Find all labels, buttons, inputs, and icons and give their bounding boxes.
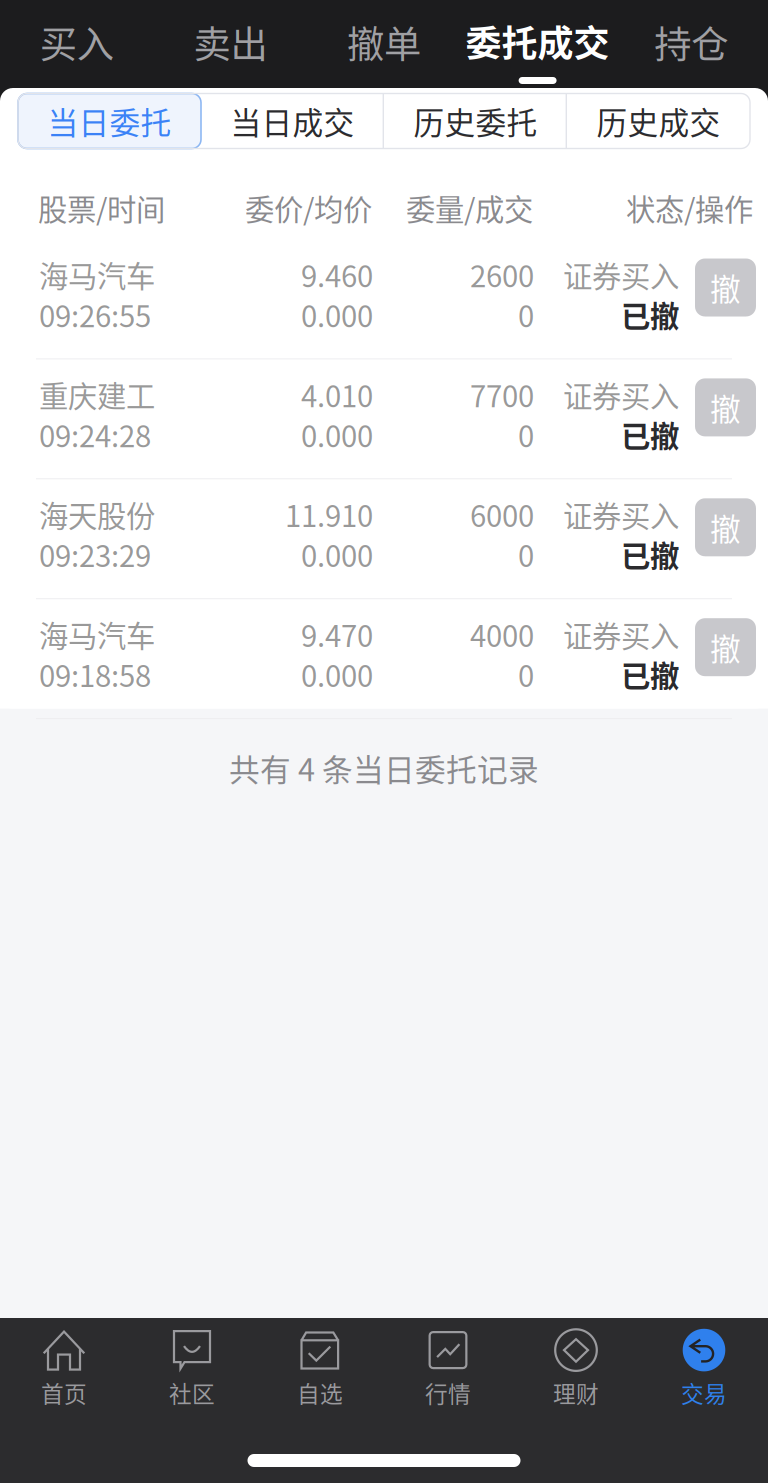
- button[interactable]: 交易: [640, 1321, 768, 1417]
- staticText: 9.470: [301, 613, 373, 655]
- staticText: 撤: [710, 505, 741, 549]
- staticText: 交易: [681, 1376, 727, 1409]
- staticText: 买入: [40, 15, 114, 69]
- staticText: 撤: [710, 265, 741, 310]
- button[interactable]: 理财: [512, 1321, 640, 1417]
- staticText: 卖出: [193, 15, 267, 69]
- staticText: 0.000: [301, 293, 373, 336]
- button[interactable]: 撤: [695, 258, 756, 316]
- staticText: 0: [518, 413, 534, 456]
- staticText: 09:23:29: [39, 533, 151, 576]
- staticText: 09:18:58: [39, 653, 151, 695]
- staticText: 股票/时间: [38, 186, 165, 229]
- button[interactable]: 当日成交: [201, 93, 384, 148]
- button[interactable]: 历史成交: [567, 93, 750, 148]
- staticText: 海马汽车: [39, 253, 155, 296]
- button[interactable]: 社区: [128, 1321, 256, 1417]
- staticText: 理财: [553, 1376, 599, 1409]
- staticText: 委托成交: [466, 15, 610, 67]
- staticText: 行情: [425, 1376, 471, 1409]
- staticText: 7700: [470, 373, 534, 416]
- staticText: 9.460: [301, 253, 373, 296]
- staticText: 共有 4 条当日委托记录: [229, 746, 539, 790]
- staticText: 0.000: [301, 653, 373, 695]
- staticText: 当日委托: [47, 99, 171, 143]
- staticText: 证券买入: [563, 493, 679, 536]
- staticText: 历史成交: [596, 99, 720, 143]
- staticText: 已撤: [621, 653, 679, 695]
- button[interactable]: 当日委托: [18, 93, 201, 148]
- staticText: 0: [518, 293, 534, 336]
- button[interactable]: 自选: [256, 1321, 384, 1417]
- staticText: 撤: [710, 625, 741, 669]
- staticText: 2600: [470, 253, 534, 296]
- staticText: 海天股份: [39, 493, 155, 536]
- staticText: 状态/操作: [626, 186, 753, 229]
- staticText: 撤: [710, 385, 741, 430]
- button[interactable]: 撤: [695, 618, 756, 676]
- staticText: 委量/成交: [406, 186, 533, 229]
- button[interactable]: 行情: [384, 1321, 512, 1417]
- staticText: 09:24:28: [39, 413, 151, 456]
- staticText: 证券买入: [563, 253, 679, 296]
- button[interactable]: 卖出: [154, 0, 307, 88]
- button[interactable]: 撤: [695, 498, 756, 556]
- staticText: 海马汽车: [39, 613, 155, 655]
- staticText: 4000: [470, 613, 534, 655]
- staticText: 已撤: [621, 293, 679, 336]
- staticText: 持仓: [654, 15, 728, 69]
- staticText: 证券买入: [563, 373, 679, 416]
- staticText: 0.000: [301, 533, 373, 576]
- button[interactable]: 历史委托: [384, 93, 567, 148]
- staticText: 已撤: [621, 533, 679, 576]
- staticText: 已撤: [621, 413, 679, 456]
- staticText: 0: [518, 533, 534, 576]
- button[interactable]: 持仓: [614, 0, 768, 88]
- staticText: 证券买入: [563, 613, 679, 655]
- button[interactable]: 首页: [0, 1321, 128, 1417]
- staticText: 社区: [169, 1376, 215, 1409]
- staticText: 首页: [41, 1376, 87, 1409]
- button[interactable]: 买入: [0, 0, 154, 88]
- staticText: 11.910: [285, 493, 373, 536]
- staticText: 历史委托: [413, 99, 537, 143]
- staticText: 委价/均价: [245, 186, 372, 229]
- staticText: 重庆建工: [39, 373, 155, 416]
- staticText: 自选: [297, 1376, 343, 1409]
- staticText: 当日成交: [230, 99, 354, 143]
- staticText: 撤单: [347, 15, 421, 69]
- staticText: 09:26:55: [39, 293, 151, 336]
- button[interactable]: 撤: [695, 378, 756, 436]
- staticText: 6000: [470, 493, 534, 536]
- button[interactable]: 撤单: [307, 0, 461, 88]
- staticText: 0.000: [301, 413, 373, 456]
- button[interactable]: 委托成交: [461, 0, 614, 88]
- staticText: 4.010: [301, 373, 373, 416]
- staticText: 0: [518, 653, 534, 695]
